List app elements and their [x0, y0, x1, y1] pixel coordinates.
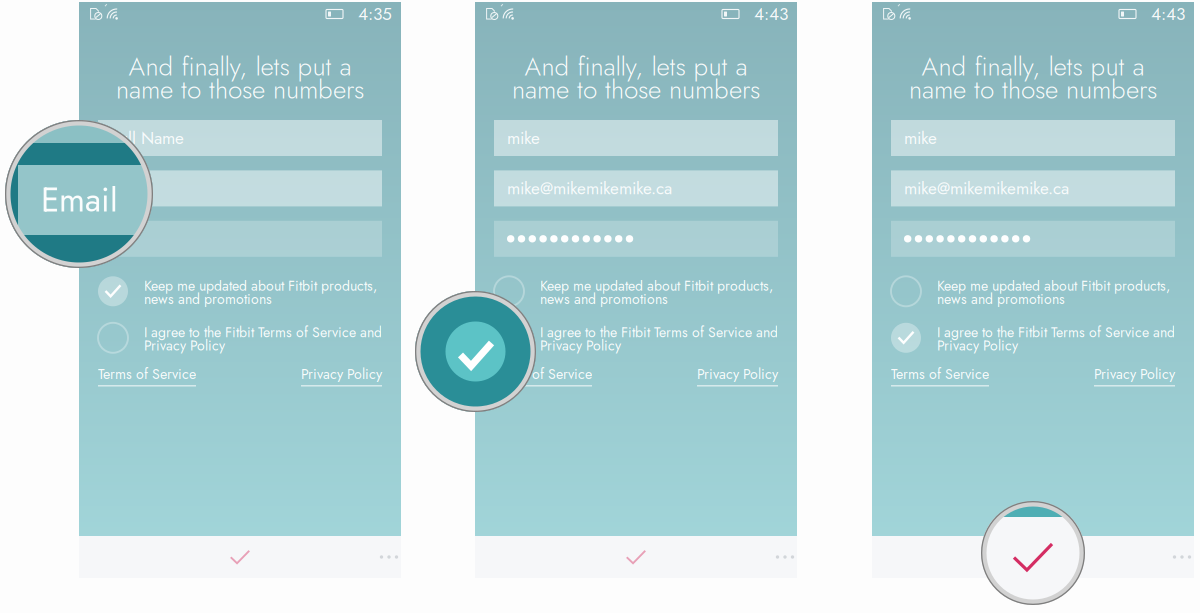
staticText: Privacy Policy: [697, 364, 778, 384]
button[interactable]: I agree to the Fitbit Terms of Service a…: [891, 323, 1175, 353]
button[interactable]: [494, 221, 778, 257]
staticText: Privacy Policy: [937, 335, 1018, 356]
button[interactable]: mike@mikemikemike.ca: [891, 170, 1175, 206]
staticText: 4:35: [358, 1, 392, 26]
staticText: And finally, lets put a: [524, 48, 747, 85]
button[interactable]: mike@mikemikemike.ca: [494, 170, 778, 206]
staticText: Keep me updated about Fitbit products,: [144, 276, 377, 296]
button[interactable]: Confirm: [612, 536, 660, 578]
staticText: name to those numbers: [909, 71, 1157, 108]
button[interactable]: mike: [494, 120, 778, 156]
button[interactable]: mike: [891, 120, 1175, 156]
button[interactable]: More options: [773, 536, 797, 578]
button[interactable]: Email: [98, 170, 382, 206]
staticText: 4:43: [754, 1, 788, 26]
button[interactable]: Confirm: [1009, 536, 1057, 578]
staticText: Privacy Policy: [540, 335, 621, 356]
staticText: mike@mikemikemike.ca: [507, 176, 672, 201]
button[interactable]: More options: [1170, 536, 1194, 578]
staticText: news and promotions: [540, 289, 668, 309]
staticText: And finally, lets put a: [128, 48, 351, 85]
staticText: news and promotions: [937, 289, 1065, 309]
staticText: Terms of Service: [494, 364, 592, 384]
staticText: Terms of Service: [891, 364, 989, 384]
staticText: Privacy Policy: [144, 335, 225, 356]
button[interactable]: Terms of Service: [891, 364, 989, 386]
staticText: I agree to the Fitbit Terms of Service a…: [540, 322, 778, 342]
staticText: 4:43: [1151, 1, 1185, 26]
staticText: mike: [507, 126, 540, 150]
button[interactable]: I agree to the Fitbit Terms of Service a…: [98, 323, 382, 353]
staticText: Privacy Policy: [1094, 364, 1175, 384]
staticText: mike@mikemikemike.ca: [904, 176, 1069, 201]
button[interactable]: Privacy Policy: [301, 364, 382, 386]
button[interactable]: [891, 221, 1175, 257]
button[interactable]: Full Name: [98, 120, 382, 156]
button[interactable]: Terms of Service: [494, 364, 592, 386]
button[interactable]: Privacy Policy: [1094, 364, 1175, 386]
button[interactable]: More options: [377, 536, 401, 578]
button[interactable]: Confirm: [216, 536, 264, 578]
staticText: I agree to the Fitbit Terms of Service a…: [937, 322, 1175, 342]
button[interactable]: Keep me updated about Fitbit products,: [891, 276, 1175, 306]
staticText: name to those numbers: [116, 71, 364, 108]
staticText: mike: [904, 126, 937, 150]
staticText: news and promotions: [144, 289, 272, 309]
button[interactable]: [98, 221, 382, 257]
staticText: Keep me updated about Fitbit products,: [937, 276, 1170, 296]
staticText: Email: [41, 176, 118, 224]
button[interactable]: Keep me updated about Fitbit products,: [494, 276, 778, 306]
button[interactable]: Keep me updated about Fitbit products,: [98, 276, 382, 306]
staticText: And finally, lets put a: [921, 48, 1144, 85]
button[interactable]: Terms of Service: [98, 364, 196, 386]
button[interactable]: Privacy Policy: [697, 364, 778, 386]
staticText: Privacy Policy: [301, 364, 382, 384]
staticText: Keep me updated about Fitbit products,: [540, 276, 773, 296]
button[interactable]: I agree to the Fitbit Terms of Service a…: [494, 323, 778, 353]
staticText: name to those numbers: [512, 71, 760, 108]
staticText: Terms of Service: [98, 364, 196, 384]
staticText: Email: [111, 176, 149, 201]
staticText: Full Name: [111, 126, 184, 150]
staticText: I agree to the Fitbit Terms of Service a…: [144, 322, 382, 342]
